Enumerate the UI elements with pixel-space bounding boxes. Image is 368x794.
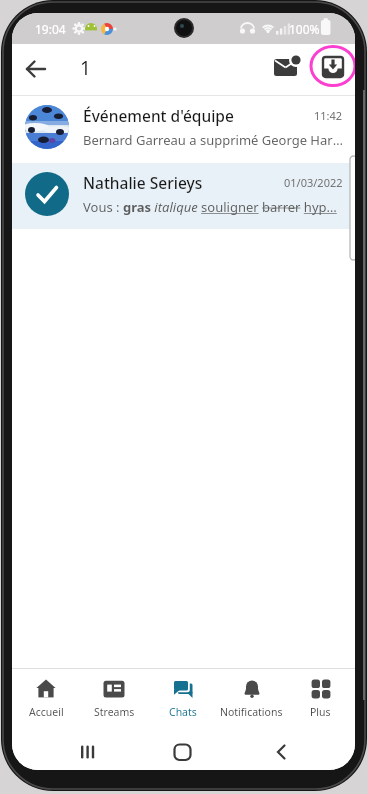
button[interactable]: Événement d'équipe [12,95,355,163]
staticText: Plus [310,705,331,719]
button[interactable] [270,744,294,762]
button[interactable]: Streams [80,669,148,730]
staticText: Bernard Garreau a supprimé George Harr… [83,131,343,149]
staticText: Vous : gras italique souligner barrer hy… [83,198,337,216]
staticText: Accueil [29,705,64,719]
button[interactable] [273,53,301,81]
staticText: Streams [94,705,135,719]
button[interactable] [24,58,48,82]
staticText: Événement d'équipe [83,105,314,126]
staticText: 11:42 [314,108,343,123]
button[interactable]: Chats [148,669,217,730]
staticText: Notifications [220,705,283,719]
staticText: 01/03/2022 [284,175,343,190]
button[interactable] [171,744,195,762]
staticText: 100% [289,21,320,37]
button[interactable] [321,55,345,79]
button[interactable]: 1 [80,55,91,81]
button[interactable]: Accueil [12,669,80,730]
button[interactable] [76,744,100,762]
button[interactable]: Nathalie Serieys [12,163,355,229]
button[interactable]: Notifications [217,669,286,730]
staticText: Chats [169,705,197,719]
staticText: 19:04 [35,21,66,37]
staticText: Nathalie Serieys [83,172,284,193]
button[interactable]: Plus [286,669,355,730]
